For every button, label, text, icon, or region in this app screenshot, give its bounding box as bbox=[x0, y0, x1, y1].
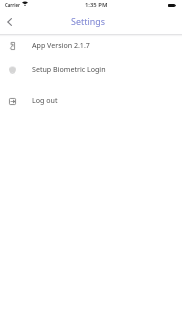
button[interactable]: Log out bbox=[0, 89, 182, 113]
staticText: Setup Biometric Login bbox=[32, 64, 106, 74]
staticText: App Version 2.1.7 bbox=[32, 40, 90, 50]
staticText: Settings bbox=[71, 15, 105, 27]
button[interactable]: Back bbox=[1, 13, 18, 30]
staticText: Log out bbox=[32, 95, 58, 105]
button[interactable]: App Version 2.1.7 bbox=[0, 34, 182, 58]
staticText: Carrier bbox=[5, 2, 20, 8]
staticText: 1:35 PM bbox=[85, 1, 108, 9]
button[interactable]: Setup Biometric Login bbox=[0, 58, 182, 82]
